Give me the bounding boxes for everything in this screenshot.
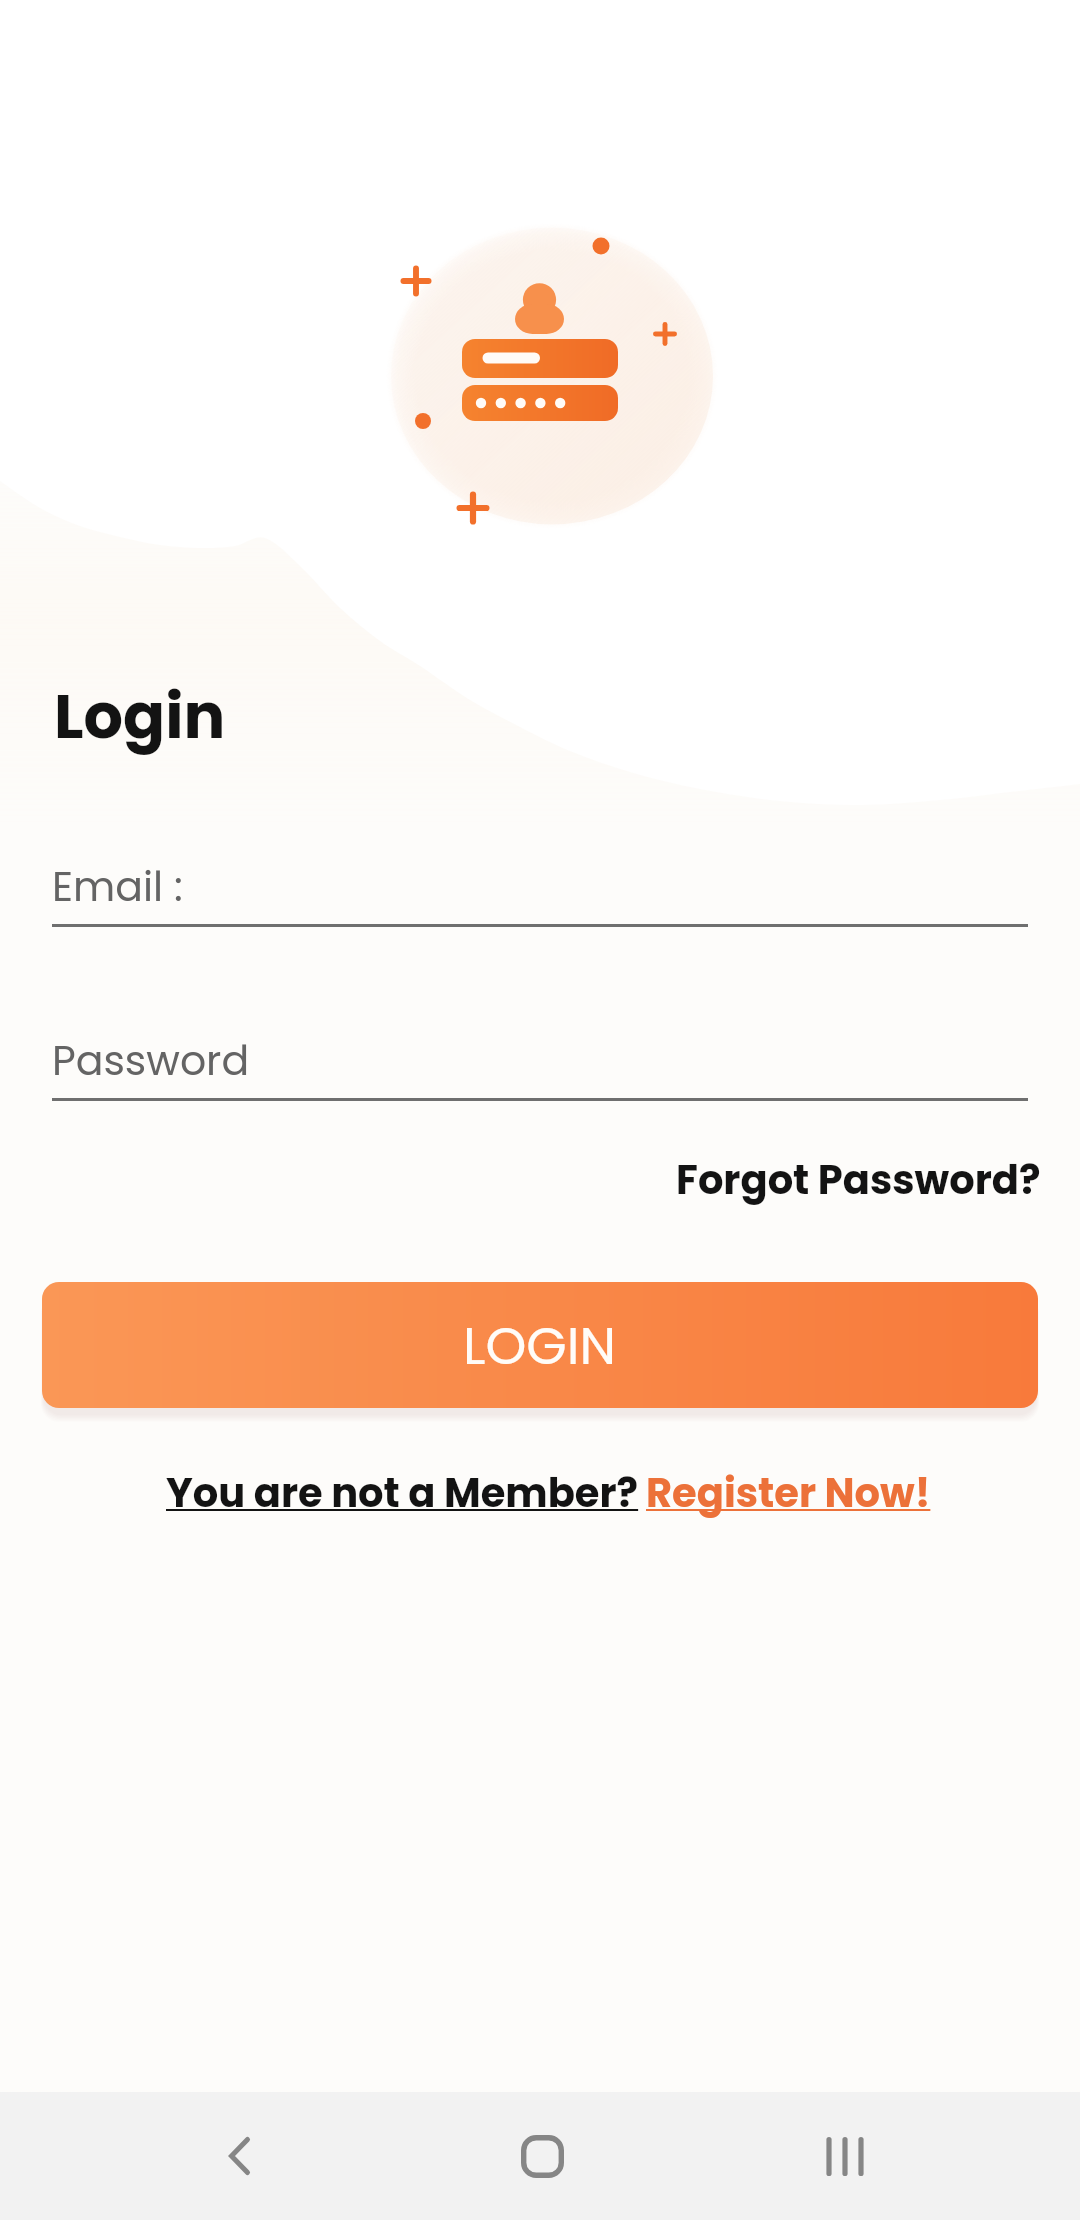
- staticText: Password: [52, 1032, 250, 1089]
- button[interactable]: You are not a Member?: [166, 1465, 639, 1521]
- staticText: Login: [54, 673, 226, 760]
- button[interactable]: Forgot Password?: [676, 1152, 1041, 1208]
- button[interactable]: Email :: [52, 858, 1028, 927]
- button[interactable]: Register Now!: [646, 1465, 931, 1521]
- button[interactable]: Home: [512, 2092, 572, 2220]
- button[interactable]: Recent apps: [815, 2092, 875, 2220]
- button[interactable]: Password: [52, 1032, 1028, 1101]
- staticText: LOGIN: [463, 1309, 617, 1382]
- button[interactable]: Back: [210, 2092, 269, 2220]
- button[interactable]: LOGIN: [42, 1282, 1038, 1408]
- staticText: Forgot Password?: [676, 1152, 1041, 1208]
- staticText: Email :: [52, 858, 183, 915]
